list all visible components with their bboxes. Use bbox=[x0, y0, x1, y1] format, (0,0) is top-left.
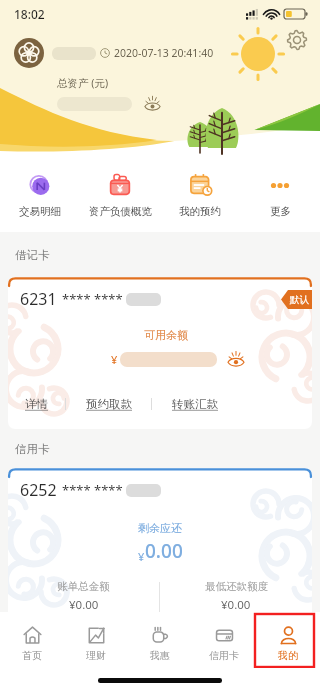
staticText: ¥0.00 bbox=[69, 597, 99, 613]
staticText: ¥0.00 bbox=[221, 597, 251, 613]
button[interactable]: 交易明细 bbox=[0, 166, 80, 232]
staticText: 默认 bbox=[290, 294, 309, 306]
button[interactable]: 更多 bbox=[240, 166, 320, 232]
staticText: 详情 bbox=[25, 397, 48, 411]
staticText: 2020-07-13 20:41:40 bbox=[114, 46, 214, 60]
staticText: **** **** bbox=[62, 481, 123, 499]
staticText: 最低还款额度 bbox=[205, 580, 268, 593]
button[interactable]: Toggle balance bbox=[225, 348, 247, 370]
button[interactable]: 转账汇款 bbox=[152, 387, 237, 421]
button[interactable]: 我的 bbox=[256, 612, 320, 668]
staticText: 理财 bbox=[86, 649, 106, 662]
staticText: 借记卡 bbox=[15, 248, 50, 262]
staticText: 0.00 bbox=[145, 538, 183, 564]
staticText: 6252 bbox=[20, 479, 57, 501]
button[interactable]: Toggle balance visibility bbox=[142, 94, 162, 114]
staticText: 信用卡 bbox=[15, 442, 50, 456]
button[interactable]: 理财 bbox=[64, 612, 128, 668]
button[interactable]: 我惠 bbox=[128, 612, 192, 668]
staticText: **** **** bbox=[62, 290, 123, 308]
staticText: 首页 bbox=[22, 649, 42, 662]
staticText: 更多 bbox=[270, 205, 291, 218]
staticText: 我的预约 bbox=[179, 205, 221, 218]
staticText: ¥ bbox=[138, 549, 145, 564]
staticText: 18:02 bbox=[14, 6, 45, 22]
button[interactable]: Settings bbox=[285, 28, 309, 52]
staticText: 预约取款 bbox=[86, 397, 132, 411]
staticText: 交易明细 bbox=[19, 205, 61, 218]
staticText: 总资产 (元) bbox=[57, 76, 109, 90]
button[interactable]: 首页 bbox=[0, 612, 64, 668]
staticText: 可用余额 bbox=[20, 328, 312, 342]
staticText: 转账汇款 bbox=[172, 397, 218, 411]
staticText: 账单总金额 bbox=[57, 580, 110, 593]
button[interactable]: 我的预约 bbox=[160, 166, 240, 232]
button[interactable]: 资产负债概览 bbox=[80, 166, 160, 232]
staticText: 信用卡 bbox=[209, 649, 239, 662]
button[interactable]: Avatar bbox=[14, 38, 44, 68]
staticText: 资产负债概览 bbox=[89, 205, 152, 218]
button[interactable]: 详情 bbox=[8, 387, 65, 421]
staticText: 我的 bbox=[278, 649, 298, 662]
button[interactable]: 预约取款 bbox=[66, 387, 151, 421]
staticText: 6231 bbox=[20, 288, 57, 310]
staticText: ¥ bbox=[111, 352, 118, 367]
staticText: 我惠 bbox=[150, 649, 170, 662]
staticText: 剩余应还 bbox=[8, 521, 312, 535]
button[interactable]: 信用卡 bbox=[192, 612, 256, 668]
